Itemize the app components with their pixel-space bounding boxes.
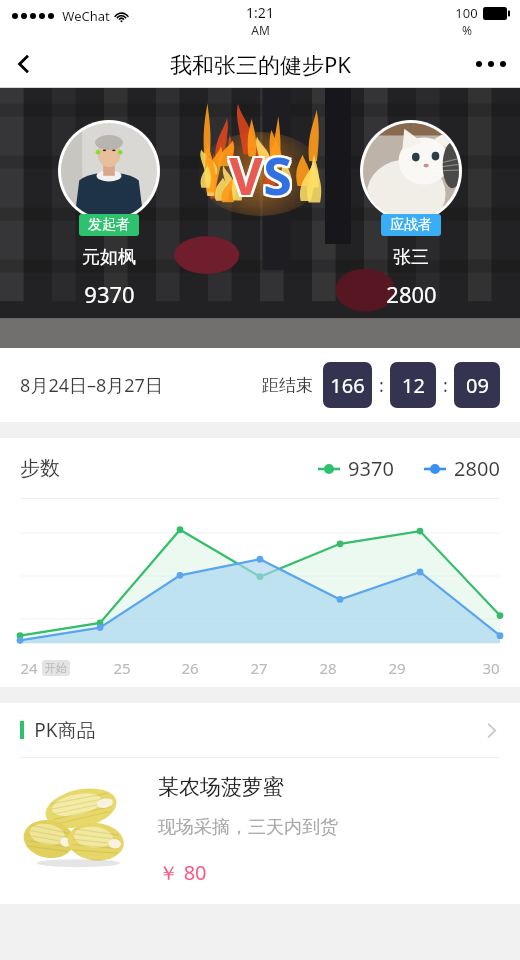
staticText: 距结束 [262,375,313,396]
staticText: 12 [402,372,425,399]
staticText: % [462,22,472,38]
staticText: 166 [330,372,365,399]
button[interactable]: 某农场菠萝蜜 [0,758,520,904]
staticText: 8月24日–8月27日 [20,373,163,398]
staticText: 开始 [45,661,67,675]
staticText: V [227,139,261,210]
staticText: 应战者 [390,216,432,234]
staticText: 某农场菠萝蜜 [158,774,284,800]
staticText: : [379,373,384,398]
staticText: 步数 [20,456,60,481]
staticText: V [227,137,261,208]
staticText: S [263,139,292,210]
staticText: WeChat [62,7,110,25]
staticText: V [231,137,265,208]
staticText: S [261,137,290,208]
staticText: 2800 [454,455,500,482]
staticText: ￥ 80 [158,859,207,886]
staticText: 2800 [386,279,437,309]
staticText: V [229,141,263,212]
staticText: 1:21 [246,3,274,22]
staticText: 30 [482,658,500,678]
staticText: S [263,137,292,208]
staticText: S [265,141,294,212]
staticText: 发起者 [88,216,130,234]
staticText: S [261,141,290,212]
staticText: V [229,139,263,210]
staticText: S [265,137,294,208]
staticText: V [231,141,265,212]
staticText: V [229,137,263,208]
button[interactable]: More options [462,40,520,88]
staticText: S [261,139,290,210]
button[interactable]: Back [0,40,48,88]
staticText: 100 [455,4,478,22]
staticText: 24 [20,658,38,678]
staticText: 现场采摘，三天内到货 [158,816,338,839]
staticText: 29 [388,658,406,678]
staticText: V [227,141,261,212]
staticText: 27 [250,658,268,678]
staticText: 我和张三的健步PK [170,49,351,79]
staticText: 9370 [84,279,135,309]
staticText: PK商品 [34,717,96,743]
staticText: 26 [181,658,199,678]
staticText: 9370 [348,455,394,482]
staticText: 元如枫 [82,246,136,269]
staticText: : [443,373,448,398]
staticText: 张三 [393,246,429,269]
button[interactable]: PK商品 [0,703,520,757]
staticText: 09 [466,372,489,399]
staticText: S [265,139,294,210]
staticText: S [263,141,292,212]
staticText: V [231,139,265,210]
staticText: 28 [319,658,337,678]
staticText: AM [251,22,270,38]
staticText: 25 [113,658,131,678]
